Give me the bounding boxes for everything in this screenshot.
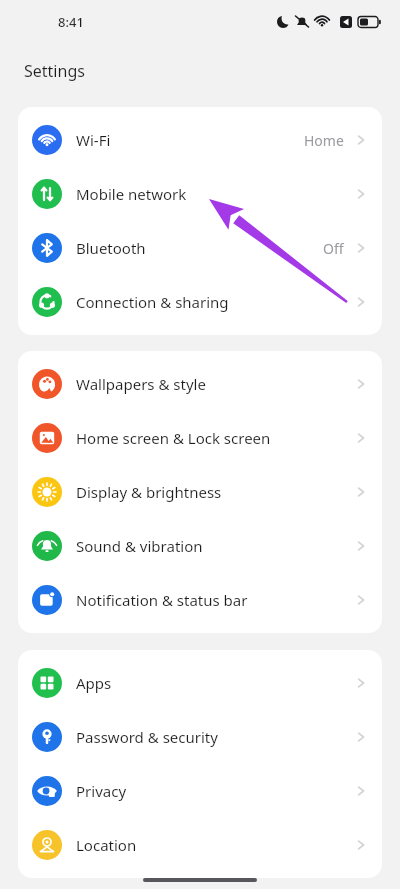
staticText: Wallpapers & style (76, 374, 354, 394)
button[interactable]: Connection & sharing (18, 275, 382, 329)
staticText: Wi-Fi (76, 130, 304, 150)
staticText: 8:41 (58, 13, 84, 31)
button[interactable]: Bluetooth (18, 221, 382, 275)
staticText: Display & brightness (76, 482, 354, 502)
staticText: Apps (76, 673, 354, 693)
button[interactable]: Sound & vibration (18, 519, 382, 573)
staticText: Password & security (76, 727, 354, 747)
button[interactable]: Location (18, 818, 382, 872)
staticText: Sound & vibration (76, 536, 354, 556)
button[interactable]: Mobile network (18, 167, 382, 221)
staticText: Notification & status bar (76, 590, 354, 610)
button[interactable]: Password & security (18, 710, 382, 764)
button[interactable]: Privacy (18, 764, 382, 818)
staticText: Privacy (76, 781, 354, 801)
staticText: Settings (24, 60, 85, 82)
button[interactable]: Notification & status bar (18, 573, 382, 627)
staticText: Bluetooth (76, 238, 323, 258)
button[interactable]: Display & brightness (18, 465, 382, 519)
staticText: Home screen & Lock screen (76, 428, 354, 448)
button[interactable]: Apps (18, 656, 382, 710)
button[interactable]: Wi-Fi (18, 113, 382, 167)
staticText: Mobile network (76, 184, 354, 204)
button[interactable]: Home screen & Lock screen (18, 411, 382, 465)
staticText: Off (323, 239, 344, 258)
button[interactable]: Wallpapers & style (18, 357, 382, 411)
staticText: Connection & sharing (76, 292, 354, 312)
staticText: Home (304, 131, 344, 150)
staticText: Location (76, 835, 354, 855)
